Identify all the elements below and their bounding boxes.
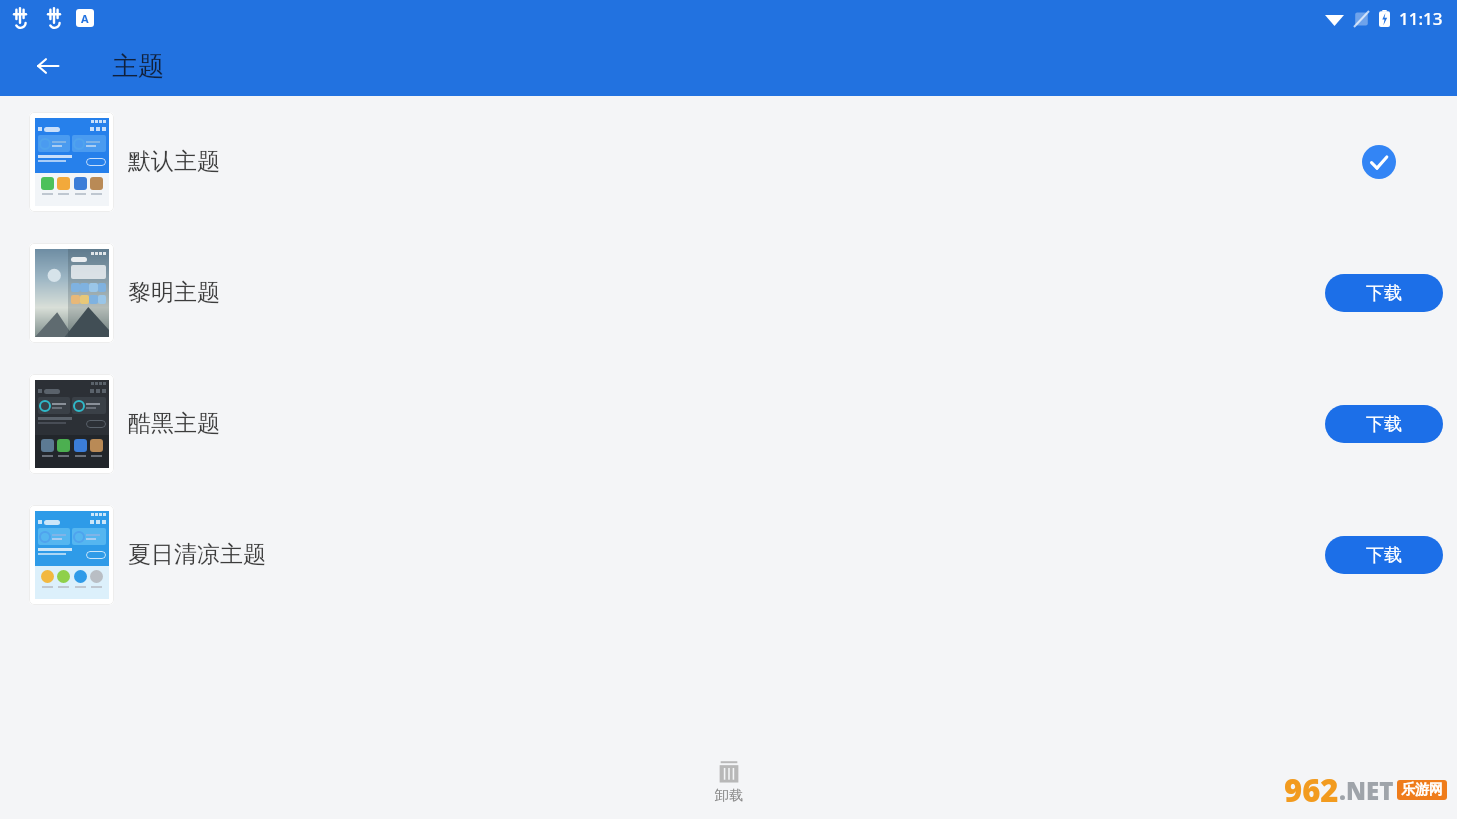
button[interactable]: 下载 — [1325, 536, 1443, 574]
button[interactable]: 默认主题 — [0, 96, 1457, 227]
staticText: 卸载 — [715, 787, 743, 805]
button[interactable]: Selected — [1362, 145, 1396, 179]
button[interactable]: 黎明主题 — [0, 227, 1457, 358]
staticText: .NET — [1339, 774, 1394, 807]
button[interactable]: Back — [26, 44, 70, 88]
staticText: 夏日清凉主题 — [128, 540, 266, 569]
staticText: 下载 — [1366, 282, 1402, 305]
staticText: 酷黑主题 — [128, 409, 220, 438]
staticText: A — [81, 11, 89, 26]
button[interactable]: 下载 — [1325, 405, 1443, 443]
staticText: 主题 — [112, 50, 164, 83]
staticText: 962 — [1284, 769, 1339, 811]
staticText: 默认主题 — [128, 147, 220, 176]
button[interactable]: 卸载 — [701, 755, 757, 809]
staticText: 黎明主题 — [128, 278, 220, 307]
button[interactable]: 下载 — [1325, 274, 1443, 312]
staticText: 下载 — [1366, 413, 1402, 436]
button[interactable]: 夏日清凉主题 — [0, 489, 1457, 620]
button[interactable]: 酷黑主题 — [0, 358, 1457, 489]
staticText: 乐游网 — [1401, 781, 1443, 799]
staticText: 下载 — [1366, 544, 1402, 567]
staticText: 11:13 — [1399, 7, 1443, 30]
